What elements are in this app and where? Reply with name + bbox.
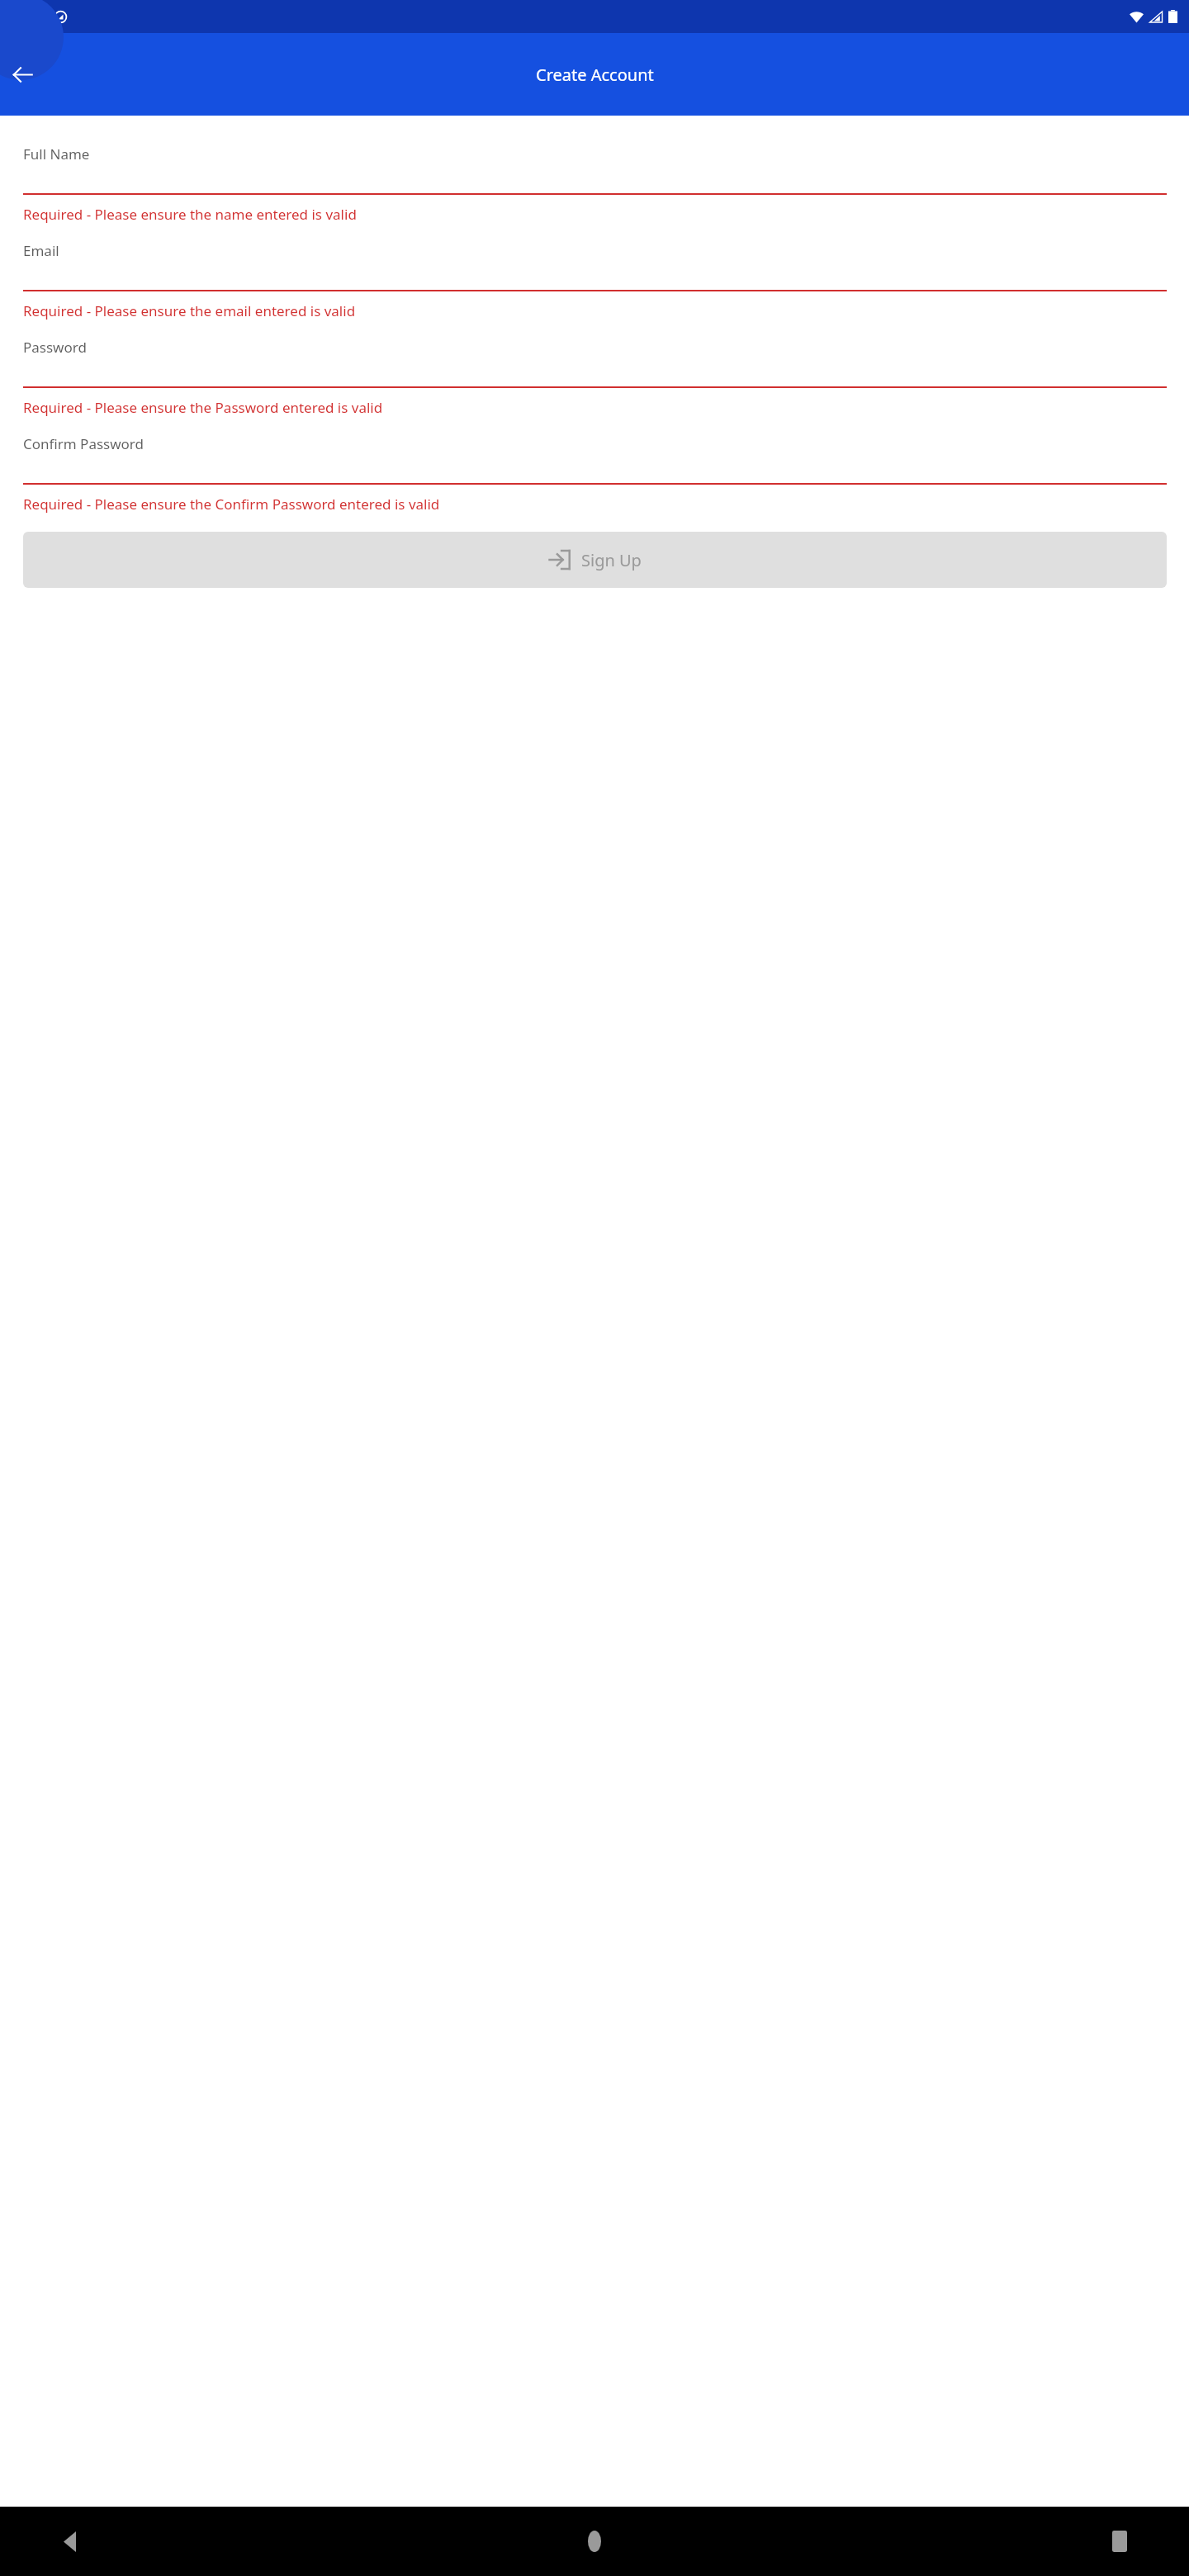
staticText: Required - Please ensure the email enter… [23, 301, 356, 320]
button[interactable]: Back [46, 2518, 92, 2564]
staticText: Password [23, 338, 87, 357]
staticText: Confirm Password [23, 434, 144, 453]
staticText: Email [23, 241, 59, 260]
staticText: Required - Please ensure the Password en… [23, 398, 383, 417]
staticText: Sign Up [581, 549, 642, 571]
button[interactable]: Sign Up [23, 532, 1167, 588]
staticText: Required - Please ensure the name entere… [23, 205, 357, 224]
button[interactable]: Home [571, 2518, 618, 2564]
staticText: Required - Please ensure the Confirm Pas… [23, 495, 440, 514]
staticText: Full Name [23, 144, 90, 163]
staticText: Create Account [536, 64, 654, 86]
button[interactable]: Back [2, 54, 42, 94]
button[interactable]: Recent apps [1097, 2518, 1143, 2564]
